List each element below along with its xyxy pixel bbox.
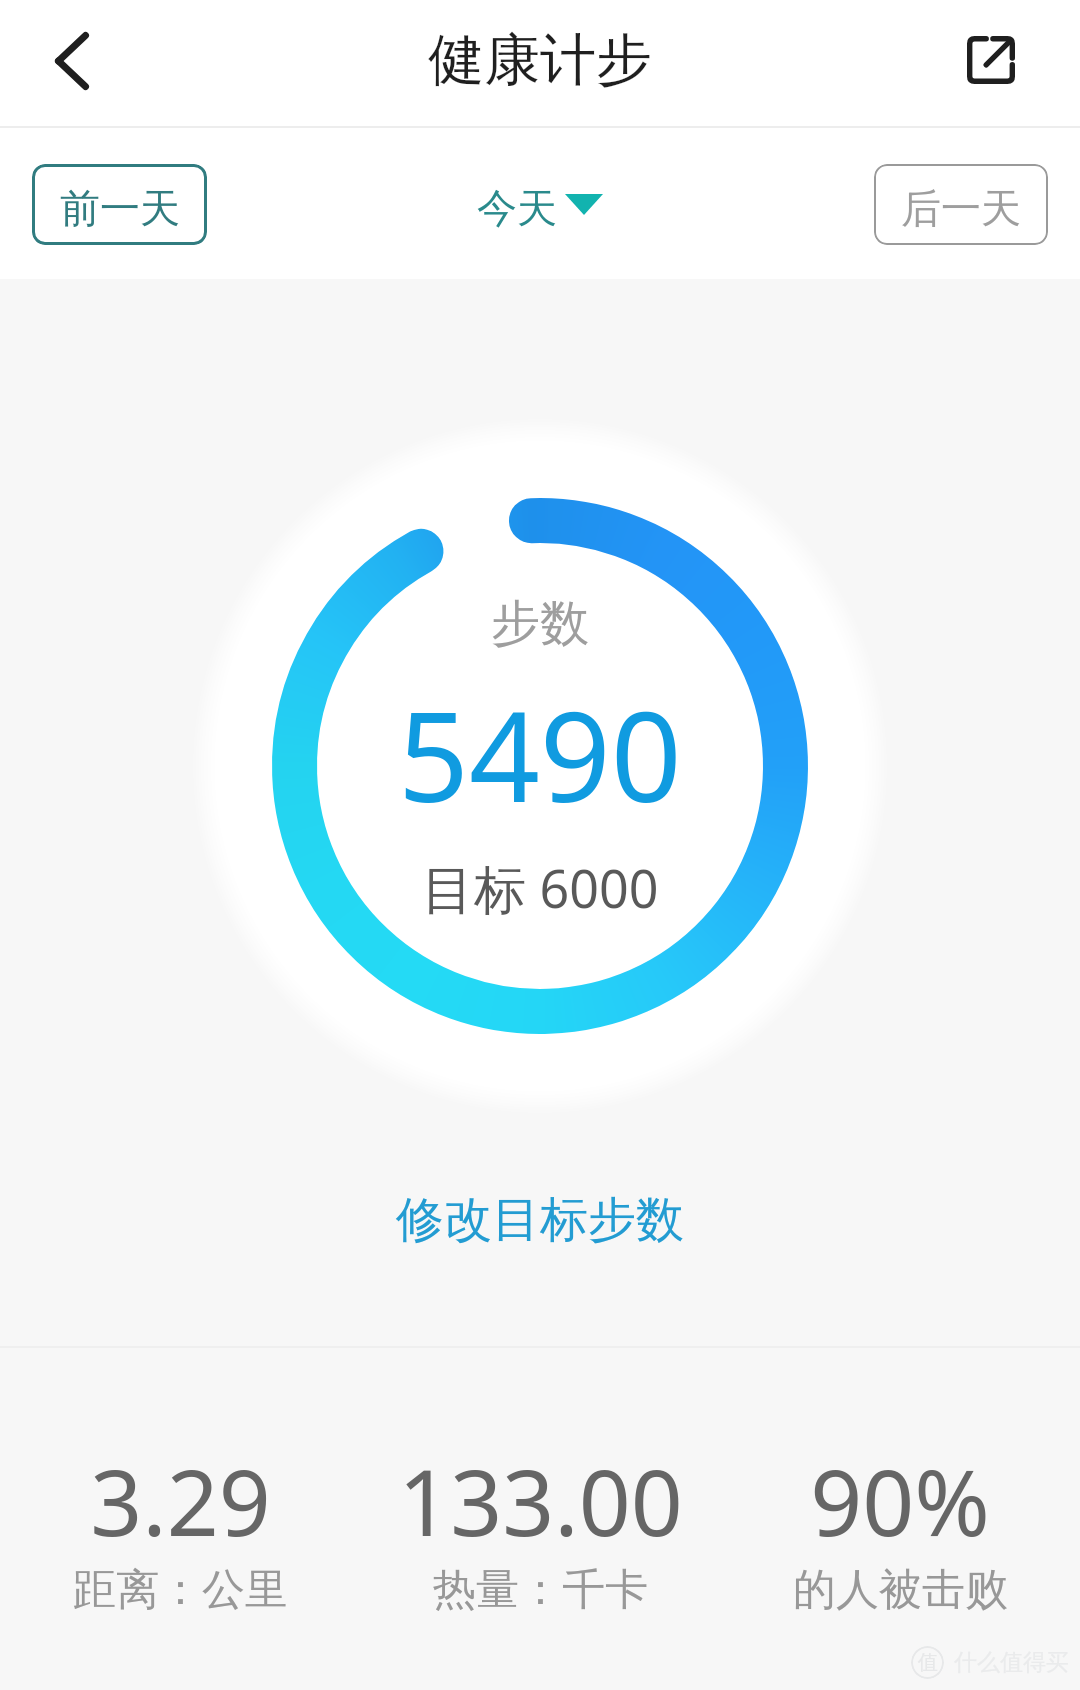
staticText: 什么值得买: [954, 1648, 1069, 1677]
staticText: 前一天: [60, 183, 180, 233]
staticText: 今天: [477, 183, 557, 233]
staticText: 后一天: [901, 183, 1021, 233]
staticText: 值: [918, 1650, 938, 1675]
button[interactable]: Share: [951, 24, 1031, 104]
button[interactable]: 今天: [469, 175, 611, 241]
staticText: 5490: [398, 669, 682, 838]
staticText: 90%: [810, 1439, 990, 1563]
staticText: 3.29: [90, 1439, 271, 1563]
staticText: 距离：公里: [73, 1563, 288, 1617]
staticText: 的人被击败: [793, 1563, 1008, 1617]
staticText: 健康计步: [428, 25, 652, 96]
button[interactable]: 修改目标步数: [370, 1178, 710, 1262]
button[interactable]: Back: [26, 18, 118, 110]
button[interactable]: 前一天: [32, 164, 207, 245]
staticText: 目标 6000: [422, 852, 659, 923]
staticText: 步数: [491, 593, 589, 655]
button[interactable]: 后一天: [874, 164, 1048, 245]
staticText: 133.00: [398, 1439, 683, 1563]
staticText: 修改目标步数: [396, 1190, 684, 1250]
staticText: 热量：千卡: [433, 1563, 648, 1617]
